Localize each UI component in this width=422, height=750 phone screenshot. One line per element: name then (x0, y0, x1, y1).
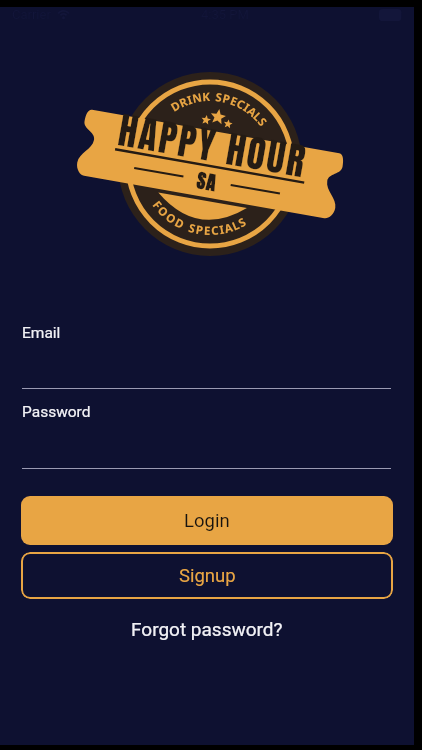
staticText: Forgot password? (131, 618, 283, 640)
staticText: Login (184, 510, 230, 532)
button[interactable]: Login (21, 496, 393, 545)
staticText: Password (22, 403, 91, 421)
button[interactable]: Signup (21, 552, 393, 599)
button[interactable]: Forgot password? (21, 609, 393, 649)
staticText: Signup (179, 565, 236, 587)
staticText: Email (22, 324, 61, 342)
